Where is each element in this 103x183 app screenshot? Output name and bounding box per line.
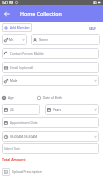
staticText: Years (53, 108, 62, 112)
button[interactable]: Age (2, 95, 14, 101)
staticText: Total Amount: (2, 157, 26, 162)
staticText: 24 (10, 108, 14, 112)
staticText: Upload Prescription (12, 170, 42, 174)
staticText: SELF (89, 27, 97, 31)
button[interactable]: Email (optional) (2, 62, 99, 73)
staticText: Male (10, 79, 18, 83)
button[interactable]: Name (31, 34, 100, 45)
staticText: Contact Person Mobile (10, 52, 44, 56)
button[interactable]: Appointment Date (2, 117, 99, 128)
button[interactable]: 06:00AM-06:30AM (2, 131, 99, 142)
staticText: Date of Birth (43, 96, 63, 100)
button[interactable]: Mr. (2, 34, 27, 45)
button[interactable]: Add Member (2, 23, 32, 32)
staticText: Mr. (9, 38, 14, 42)
button[interactable]: Date of Birth (37, 95, 63, 101)
button[interactable]: Upload Prescription (2, 168, 42, 176)
button[interactable]: SELF (88, 26, 98, 32)
button[interactable]: Contact Person Mobile (2, 48, 99, 59)
button[interactable]: Male (2, 75, 99, 86)
staticText: 06:00AM-06:30AM (10, 135, 38, 139)
staticText: Select Test (4, 147, 20, 151)
button[interactable]: 24 (2, 104, 40, 115)
staticText: Email (optional) (10, 66, 34, 70)
staticText: 3:41 PM (2, 1, 14, 5)
staticText: Home Collection (20, 10, 62, 17)
button[interactable]: Back (2, 9, 12, 19)
staticText: Age (8, 96, 14, 100)
staticText: 4G (93, 1, 97, 5)
button[interactable]: Select Test (2, 143, 99, 154)
staticText: Add Member (10, 26, 30, 30)
staticText: Name (39, 38, 48, 42)
staticText: Appointment Date (10, 121, 38, 125)
button[interactable]: Years (45, 104, 99, 115)
